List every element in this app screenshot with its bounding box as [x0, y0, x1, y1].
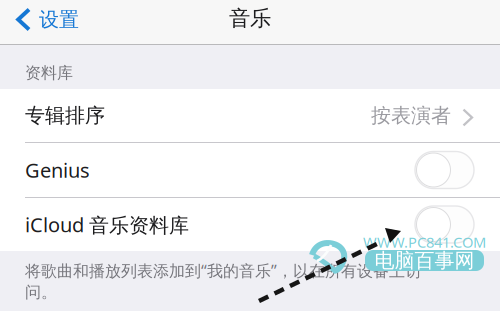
staticText: WWW.PC841.COM	[363, 232, 486, 252]
staticText: Genius	[25, 157, 90, 183]
button[interactable]: 专辑排序	[0, 89, 500, 142]
button[interactable]: iCloud 音乐资料库	[415, 206, 474, 243]
staticText: 资料库	[25, 63, 73, 83]
staticText: 专辑排序	[25, 103, 105, 128]
button[interactable]: Genius	[415, 151, 474, 188]
staticText: 音乐	[229, 5, 271, 32]
staticText: 将歌曲和播放列表添加到“我的音乐”，以在所有设备上访问。	[25, 260, 421, 302]
staticText: iCloud 音乐资料库	[25, 211, 189, 238]
staticText: 设置	[39, 7, 79, 32]
staticText: 按表演者	[371, 103, 451, 128]
button[interactable]: 设置	[0, 0, 91, 45]
staticText: 电脑百事网	[374, 248, 474, 273]
